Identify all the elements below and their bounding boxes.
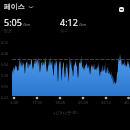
staticText: 3:40 bbox=[6, 100, 22, 105]
button[interactable]: Expand chart bbox=[119, 7, 124, 12]
staticText: 4:12 bbox=[1, 40, 9, 45]
staticText: /km bbox=[23, 22, 31, 27]
staticText: /km bbox=[79, 22, 87, 27]
staticText: 4:12 bbox=[60, 16, 78, 28]
staticText: 11:03 bbox=[29, 100, 45, 105]
staticText: 40:35 bbox=[121, 100, 130, 105]
staticText: 25:49 bbox=[75, 100, 91, 105]
staticText: 33:12 bbox=[98, 100, 114, 105]
staticText: 4:38 bbox=[1, 51, 9, 56]
staticText: 5:30 bbox=[1, 73, 9, 78]
staticText: 5:56 bbox=[1, 84, 9, 89]
staticText: 시간(시:분:초) bbox=[53, 110, 78, 115]
button[interactable]: 페이스 bbox=[4, 2, 34, 11]
staticText: 평균 bbox=[4, 28, 12, 33]
staticText: 6:22 bbox=[1, 95, 9, 100]
staticText: 최고 bbox=[60, 28, 68, 33]
staticText: 5:04 bbox=[1, 62, 9, 67]
staticText: 18:26 bbox=[52, 100, 68, 105]
staticText: 5:05 bbox=[4, 16, 22, 28]
staticText: 페이스 bbox=[4, 2, 25, 11]
